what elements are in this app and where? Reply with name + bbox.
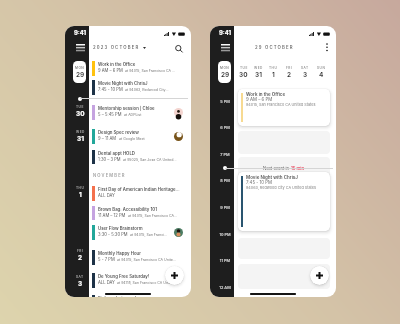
button[interactable]: SAT [297, 66, 313, 79]
staticText: 3 [78, 280, 83, 288]
button[interactable]: WED [251, 66, 266, 79]
button[interactable]: Brown Bag: Accessibility 101 [92, 206, 191, 220]
button[interactable]: TUE [236, 66, 251, 79]
button[interactable]: Movie Night with ChrisJ [92, 80, 191, 95]
staticText: TUE [76, 105, 84, 109]
button[interactable]: THU [68, 186, 92, 199]
staticText: 11 AM – 12 PM [98, 213, 126, 218]
button[interactable]: Pickup photographs [92, 295, 191, 297]
staticText: 30 [76, 110, 85, 118]
staticText: WED [76, 130, 85, 134]
staticText: 5 - 7 PM [98, 257, 115, 262]
button[interactable] [238, 264, 330, 289]
staticText: 2 [78, 254, 83, 262]
staticText: at 94015, San Francisco CA... [128, 214, 178, 218]
button[interactable]: FRI [281, 66, 297, 79]
button[interactable]: Next event in [238, 157, 330, 180]
button[interactable]: SAT [68, 275, 92, 288]
staticText: Pickup photographs [98, 296, 140, 297]
staticText: ALL DAY [98, 280, 115, 285]
staticText: 94015, San Francisco CA United States [246, 102, 316, 107]
staticText: Monthly Happy Hour [98, 251, 141, 256]
button[interactable]: More options [322, 43, 331, 52]
staticText: User Flow Brainstorm [98, 226, 143, 231]
button[interactable]: 2023 OCTOBER [93, 45, 146, 50]
button[interactable]: Search [173, 43, 184, 54]
staticText: 5 PM [213, 99, 237, 104]
staticText: 9 – 11 AM [98, 136, 117, 141]
staticText: Work in the Office [98, 62, 136, 67]
button[interactable]: Work in the Office [238, 89, 330, 126]
button[interactable]: De Young Free Saturday! [92, 273, 191, 288]
button[interactable]: SUN [313, 66, 329, 79]
staticText: 1 [79, 191, 82, 199]
staticText: 7:45 - 10 PM [98, 87, 123, 92]
staticText: SAT [301, 66, 309, 70]
button[interactable]: WED [68, 130, 92, 143]
staticText: 8 PM [213, 178, 237, 183]
staticText: at 94015, San Francisco CA Unite... [117, 258, 176, 262]
staticText: Dental appt HOLD [98, 151, 135, 156]
staticText: 1 [272, 71, 275, 79]
staticText: 30 [239, 71, 248, 79]
staticText: MON [220, 66, 230, 70]
staticText: 2 [287, 71, 292, 79]
button[interactable]: Add event [310, 266, 329, 285]
staticText: 7 PM [213, 152, 237, 157]
button[interactable]: Design Spec review [92, 129, 191, 144]
staticText: at 94015, San Franci... [130, 233, 168, 237]
button[interactable]: User Flow Brainstorm [92, 225, 191, 240]
staticText: at ADPList [124, 113, 142, 117]
staticText: at 94118, San Francisco CA Unite... [117, 281, 176, 285]
staticText: 12 AM [213, 285, 237, 290]
button[interactable]: THU [266, 66, 281, 79]
staticText: Brown Bag: Accessibility 101 [98, 207, 157, 212]
staticText: First Day of American Indian Heritage… [98, 187, 180, 192]
button[interactable]: First Day of American Indian Heritage… [92, 186, 191, 201]
staticText: Movie Night with ChrisJ [246, 175, 298, 180]
staticText: 9 PM [213, 205, 237, 210]
staticText: 10 PM [213, 232, 237, 237]
staticText: 9:41 [213, 29, 237, 36]
staticText: Work in the Office [246, 92, 286, 97]
staticText: 4 [319, 71, 324, 79]
staticText: Mentorship session | Chloe [98, 106, 155, 111]
staticText: De Young Free Saturday! [98, 274, 150, 279]
staticText: at 95025, San Jose CA United... [123, 158, 177, 162]
staticText: 3:30 - 5:30 PM [98, 232, 128, 237]
staticText: at Google Meet [119, 137, 145, 141]
staticText: THU [269, 66, 278, 70]
button[interactable]: Add event [165, 266, 184, 285]
button[interactable]: Work in the Office [92, 61, 191, 76]
button[interactable]: Menu [221, 44, 230, 51]
button[interactable]: Monthly Happy Hour [92, 250, 191, 265]
staticText: at 94063, Redwood City... [125, 88, 169, 92]
staticText: FRI [286, 66, 293, 70]
button[interactable]: MON [218, 61, 231, 83]
staticText: Design Spec review [98, 130, 139, 135]
staticText: MON [75, 66, 85, 70]
staticText: 5 – 5:45 PM [98, 112, 122, 117]
button[interactable]: Movie Night with ChrisJ [238, 172, 330, 231]
button[interactable]: TUE [68, 105, 92, 118]
staticText: 7:45 - 10 PM [246, 180, 273, 185]
button[interactable]: Dental appt HOLD [92, 150, 191, 164]
staticText: WED [254, 66, 263, 70]
button[interactable]: Mentorship session | Chloe [92, 105, 191, 120]
staticText: 11 PM [213, 258, 237, 263]
staticText: 9:41 [68, 29, 92, 36]
button[interactable]: MON [73, 61, 86, 83]
staticText: ALL DAY [98, 193, 115, 198]
staticText: NOVEMBER [93, 173, 126, 178]
staticText: SUN [317, 66, 326, 70]
staticText: 9 AM – 6 PM [246, 97, 273, 102]
staticText: SAT [76, 275, 84, 279]
staticText: 31 [77, 135, 84, 143]
staticText: 15 min [291, 166, 305, 171]
staticText: TUE [240, 66, 248, 70]
button[interactable]: Menu [76, 44, 85, 51]
button[interactable]: FRI [68, 249, 92, 262]
staticText: 9 AM – 6 PM [98, 68, 123, 73]
